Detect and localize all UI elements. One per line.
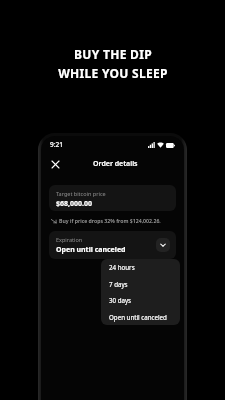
button[interactable]: 24 hours — [101, 259, 180, 275]
button[interactable]: Close — [49, 158, 62, 171]
staticText: Order details — [93, 159, 138, 169]
staticText: 9:21 — [50, 140, 63, 149]
staticText: WHILE YOU SLEEP — [58, 65, 168, 81]
staticText: $68,000.00 — [56, 199, 92, 209]
staticText: 24 hours — [109, 263, 135, 271]
staticText: 30 days — [109, 296, 132, 304]
button[interactable]: Open until canceled — [101, 309, 180, 325]
button[interactable]: Target bitcoin price — [49, 185, 176, 211]
staticText: BUY THE DIP — [74, 46, 152, 62]
staticText: Open until canceled — [56, 245, 126, 255]
button[interactable]: Expiration — [49, 231, 176, 259]
staticText: Open until canceled — [109, 313, 167, 321]
button[interactable]: Expand expiration options — [156, 238, 170, 252]
staticText: Target bitcoin price — [56, 190, 106, 197]
staticText: Expiration — [56, 236, 83, 243]
button[interactable]: 30 days — [101, 292, 180, 308]
button[interactable]: 7 days — [101, 276, 180, 292]
staticText: Buy if price drops 32% from $124,002.26. — [59, 217, 161, 224]
staticText: 7 days — [109, 280, 128, 288]
